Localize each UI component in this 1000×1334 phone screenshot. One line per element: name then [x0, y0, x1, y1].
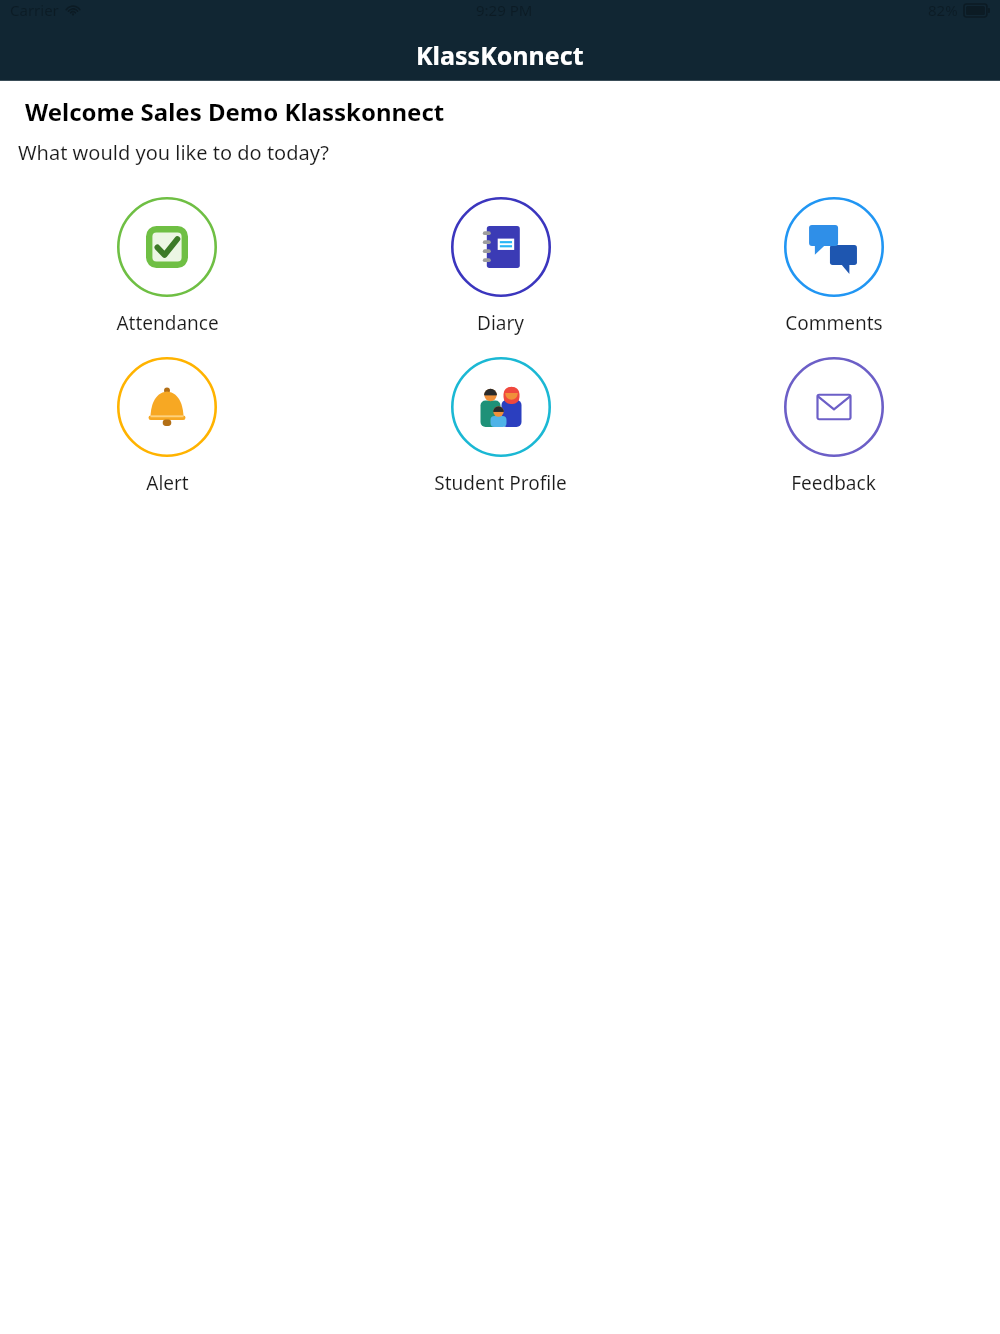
button[interactable]: Comments	[667, 197, 1000, 336]
staticText: Carrier	[10, 0, 59, 20]
button[interactable]: Alert	[0, 357, 334, 496]
button[interactable]: Diary	[334, 197, 667, 336]
button[interactable]: Feedback	[667, 357, 1000, 496]
staticText: What would you like to do today?	[18, 139, 330, 166]
staticText: KlassKonnect	[416, 38, 584, 72]
staticText: 82%	[928, 0, 958, 20]
staticText: Welcome Sales Demo Klasskonnect	[25, 95, 445, 128]
staticText: 9:29 PM	[476, 0, 533, 20]
staticText: Attendance	[116, 310, 219, 336]
staticText: Alert	[146, 470, 189, 496]
staticText: Student Profile	[434, 470, 567, 496]
button[interactable]: Attendance	[0, 197, 334, 336]
staticText: Feedback	[791, 470, 876, 496]
button[interactable]: Student Profile	[334, 357, 667, 496]
staticText: Diary	[477, 310, 524, 336]
staticText: Comments	[785, 310, 883, 336]
